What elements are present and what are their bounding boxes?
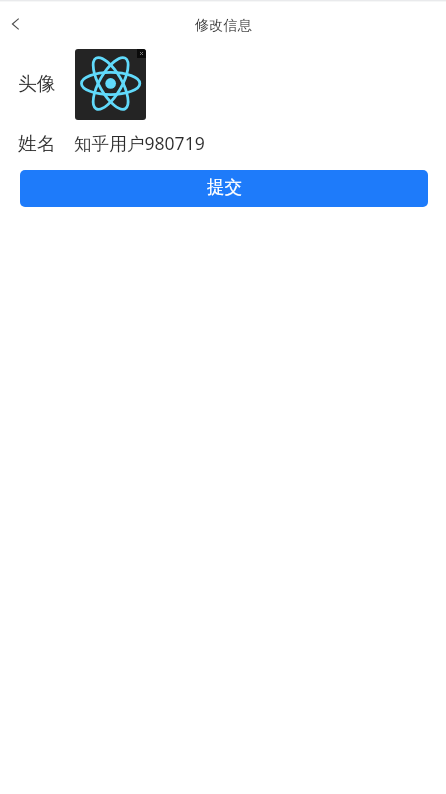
staticText: 知乎用户980719 bbox=[74, 131, 205, 155]
button[interactable]: Back bbox=[0, 6, 32, 42]
button[interactable]: Avatar image bbox=[75, 49, 146, 120]
staticText: 修改信息 bbox=[195, 16, 252, 34]
staticText: 头像 bbox=[18, 72, 56, 96]
staticText: 提交 bbox=[207, 176, 243, 198]
button[interactable]: 提交 bbox=[20, 170, 428, 207]
button[interactable]: Remove avatar bbox=[137, 49, 146, 58]
staticText: 姓名 bbox=[18, 132, 56, 156]
